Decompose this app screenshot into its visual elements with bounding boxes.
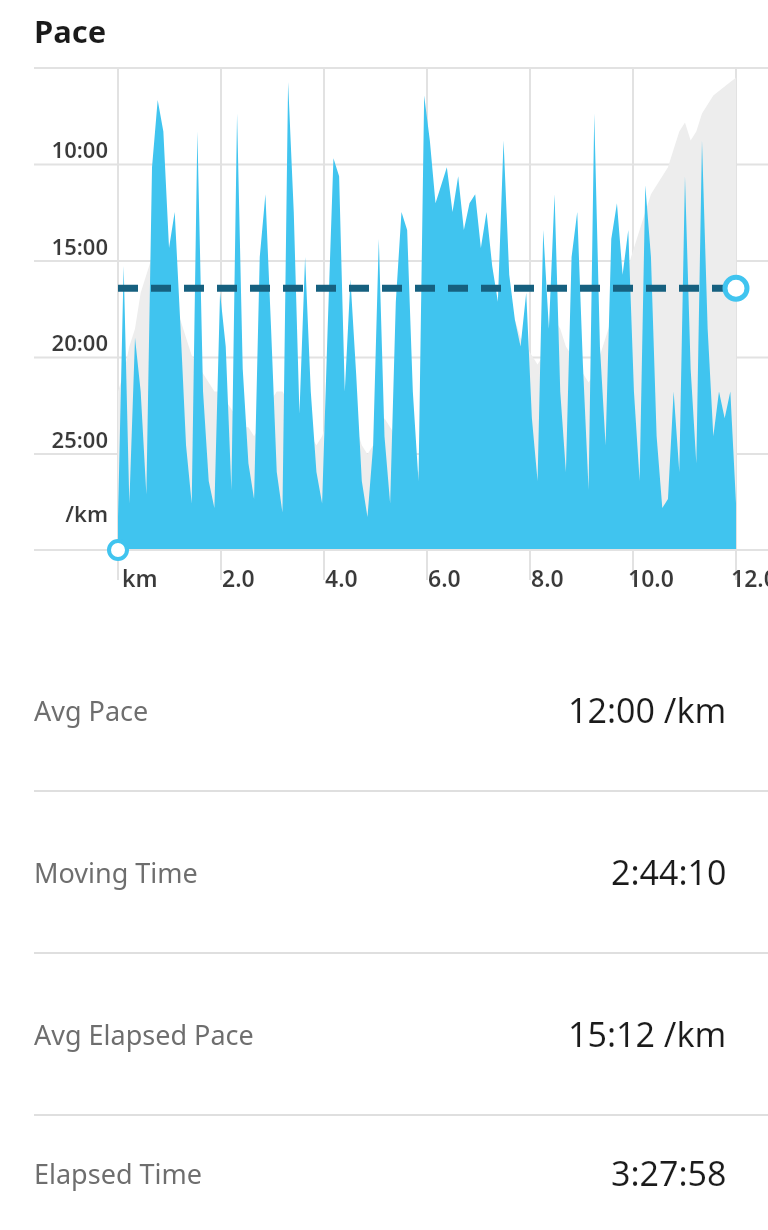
staticText: 8.0 xyxy=(531,562,564,593)
staticText: /km xyxy=(30,498,108,528)
staticText: 3:27:58 xyxy=(611,1150,727,1196)
staticText: 6.0 xyxy=(428,562,461,593)
button[interactable]: Elapsed Time xyxy=(0,1116,768,1230)
staticText: 12:00 /km xyxy=(568,687,727,733)
staticText: 20:00 xyxy=(30,327,108,357)
staticText: 15:00 xyxy=(30,231,108,261)
staticText: 10.0 xyxy=(628,562,674,593)
staticText: 12.0 xyxy=(731,562,768,593)
staticText: 2.0 xyxy=(222,562,255,593)
staticText: 10:00 xyxy=(30,134,108,164)
staticText: 15:12 /km xyxy=(568,1011,727,1057)
staticText: 25:00 xyxy=(30,424,108,454)
staticText: 4.0 xyxy=(325,562,358,593)
staticText: km xyxy=(122,562,158,593)
staticText: Avg Elapsed Pace xyxy=(34,1016,254,1053)
staticText: Avg Pace xyxy=(34,692,149,729)
staticText: 2:44:10 xyxy=(611,849,727,895)
staticText: Elapsed Time xyxy=(34,1155,202,1192)
staticText: Moving Time xyxy=(34,854,198,891)
button[interactable]: Moving Time xyxy=(0,792,768,954)
button[interactable]: Avg Elapsed Pace xyxy=(0,954,768,1116)
staticText: Pace xyxy=(34,10,107,52)
button[interactable]: Avg Pace xyxy=(0,630,768,792)
